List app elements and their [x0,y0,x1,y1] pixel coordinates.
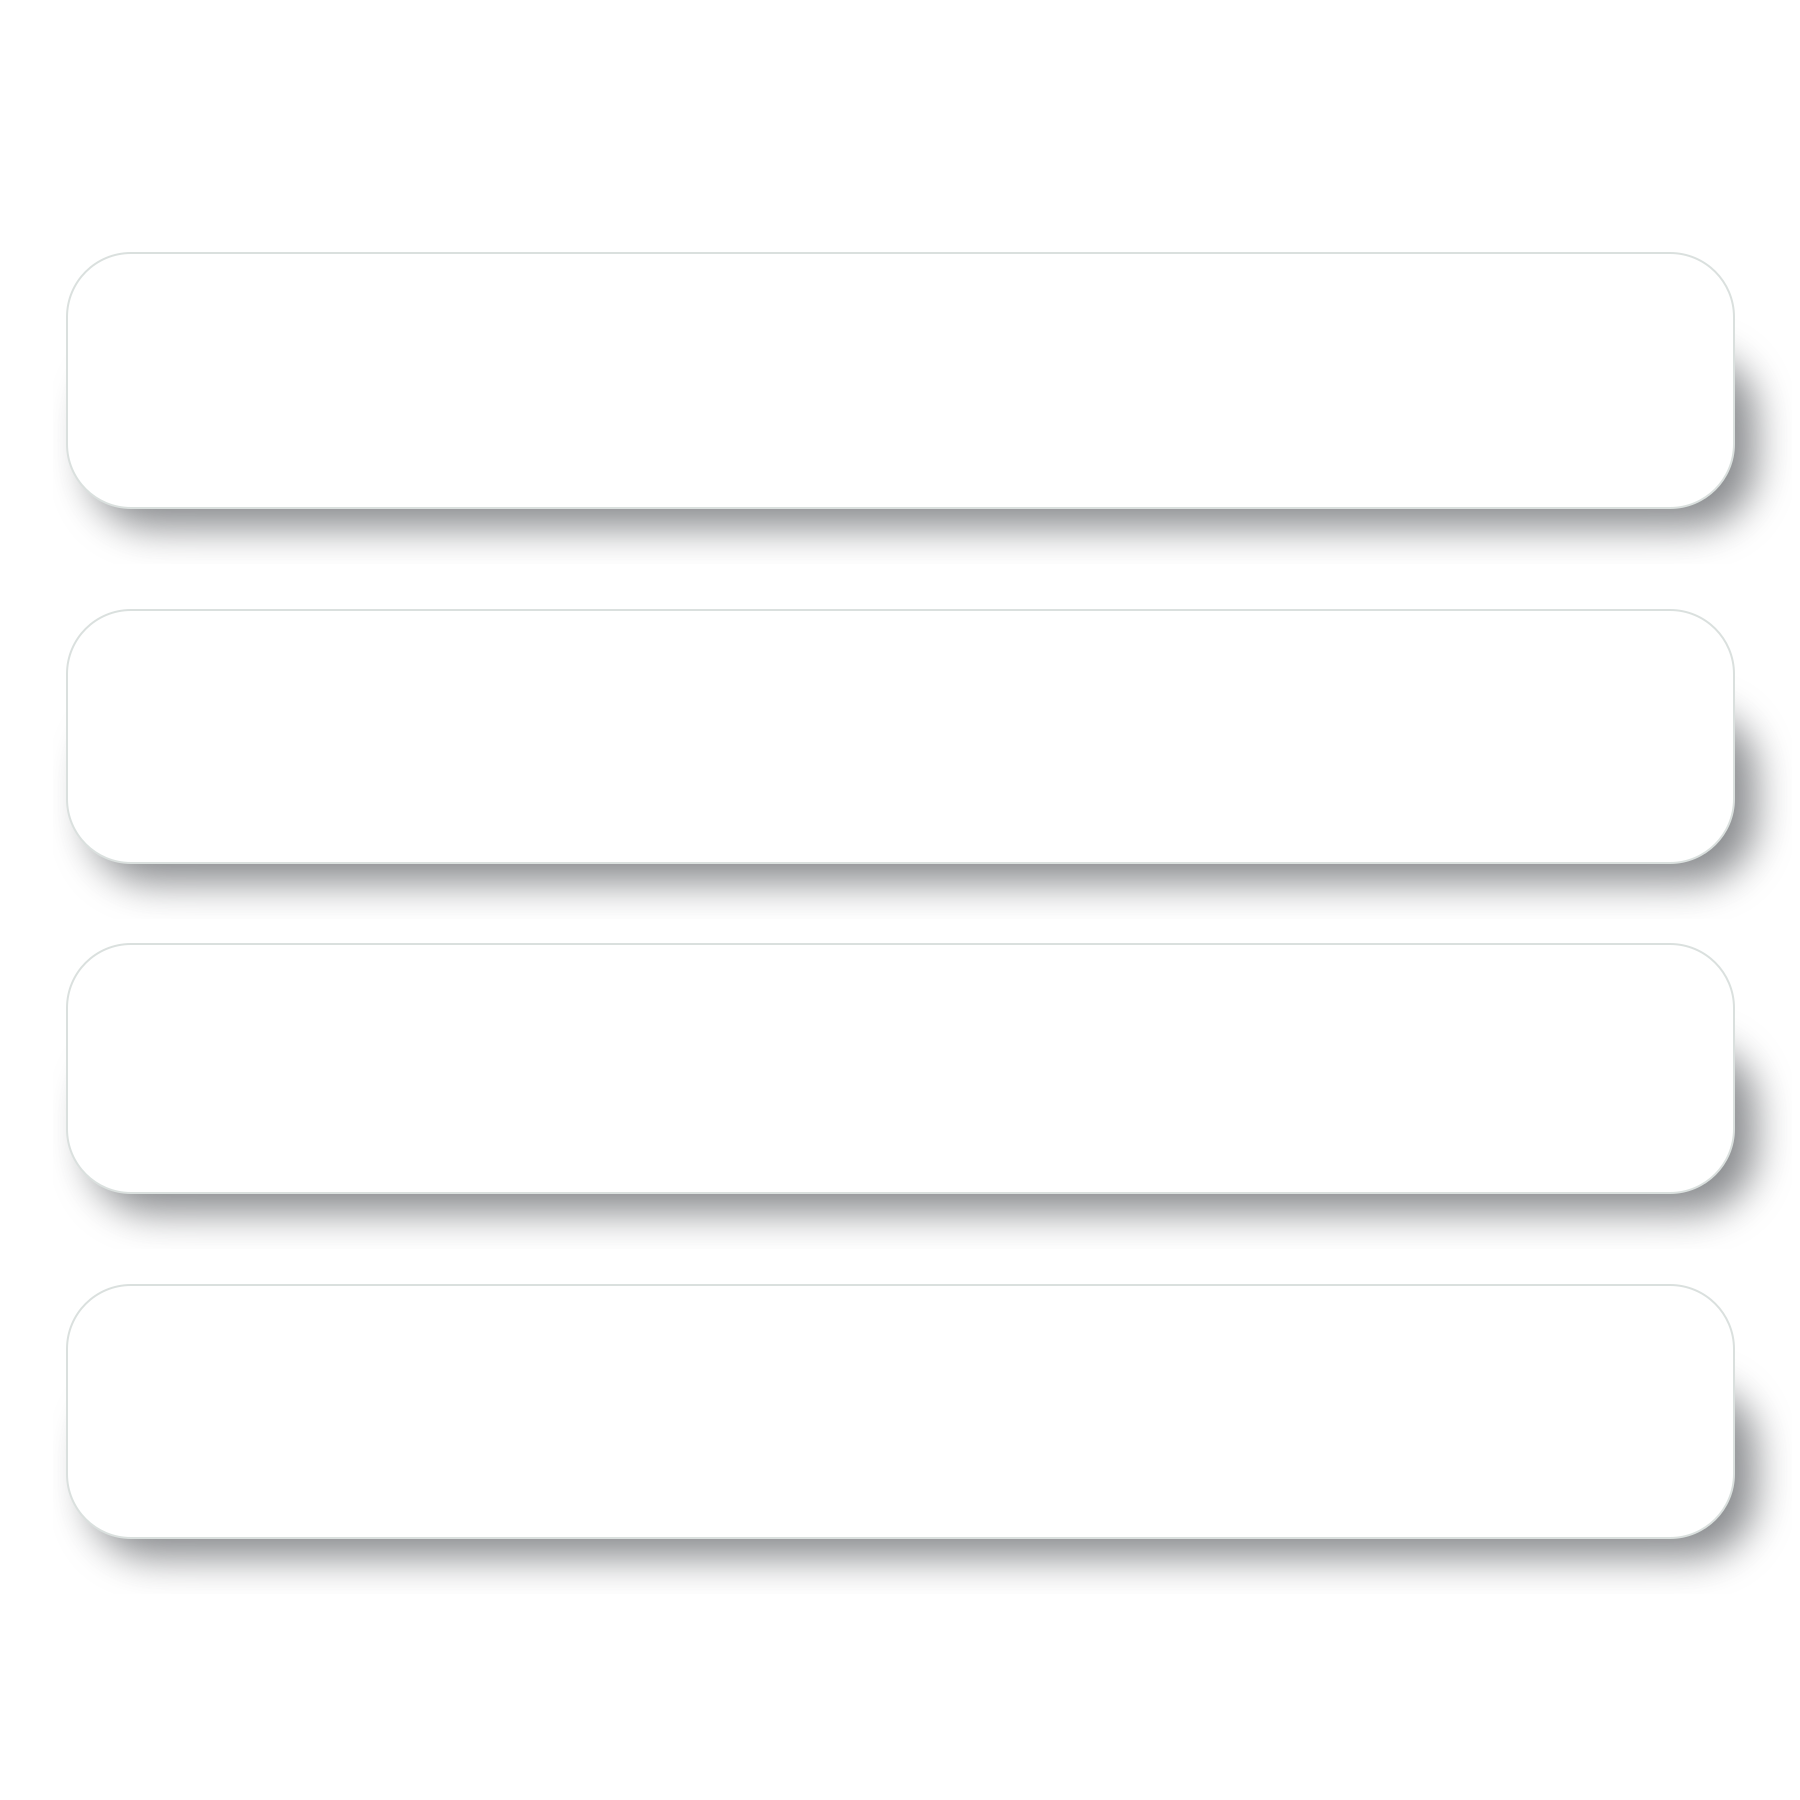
button[interactable]: Content placeholder [67,944,1734,1193]
button[interactable]: Content placeholder [67,253,1734,508]
button[interactable]: Content placeholder [67,610,1734,863]
button[interactable]: Content placeholder [67,1285,1734,1538]
